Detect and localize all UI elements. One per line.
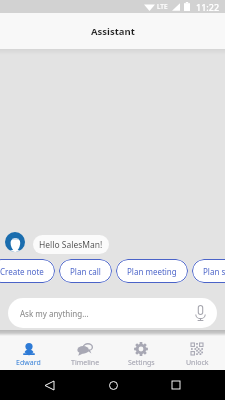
staticText: Hello SalesMan! (39, 239, 103, 251)
button[interactable]: Voice input (188, 301, 212, 325)
button[interactable]: Plan call (59, 259, 112, 283)
button[interactable]: Create note (0, 259, 55, 283)
staticText: Settings (128, 358, 155, 368)
staticText: Plan call (70, 266, 101, 277)
button[interactable]: Plan something (192, 259, 225, 283)
button[interactable]: Assistant avatar (5, 232, 25, 252)
staticText: LTE (157, 2, 168, 11)
staticText: Edward (16, 358, 41, 368)
button[interactable]: Edward (0, 336, 57, 370)
button[interactable]: Recents (161, 370, 191, 400)
button[interactable]: Plan meeting (116, 259, 188, 283)
button[interactable]: Ask my anything... (8, 298, 217, 328)
staticText: Ask my anything... (20, 308, 188, 319)
staticText: Unlock (186, 358, 209, 368)
button[interactable]: Timeline (57, 336, 113, 370)
staticText: Assistant (91, 25, 135, 38)
button[interactable]: Hello SalesMan! (33, 235, 109, 254)
staticText: Create note (0, 266, 44, 277)
staticText: Plan meeting (127, 266, 177, 277)
staticText: Plan something (203, 266, 225, 277)
button[interactable]: Home (98, 370, 128, 400)
button[interactable]: Unlock (169, 336, 225, 370)
button[interactable]: Settings (113, 336, 169, 370)
staticText: Timeline (71, 358, 100, 368)
staticText: 11:22 (196, 1, 220, 13)
button[interactable]: Back (34, 370, 64, 400)
